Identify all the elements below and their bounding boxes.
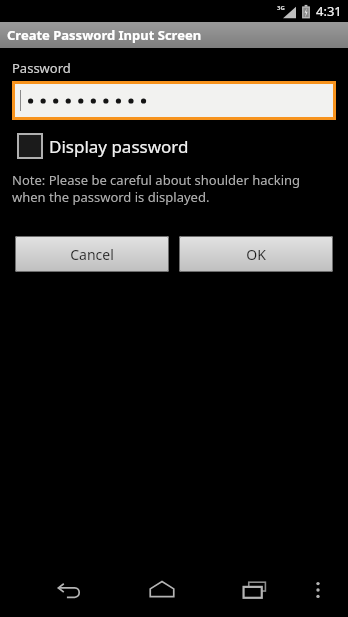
staticText: Display password	[49, 135, 189, 158]
staticText: OK	[246, 245, 266, 264]
button[interactable]: More options	[298, 570, 338, 610]
button[interactable]: Cancel	[15, 236, 169, 272]
staticText: Create Password Input Screen	[7, 26, 202, 44]
staticText: Password	[12, 59, 71, 77]
button[interactable]: Home	[139, 567, 185, 613]
button[interactable]: Display password	[12, 133, 189, 159]
staticText: Note: Please be careful about shoulder h…	[12, 171, 336, 206]
button[interactable]: Recent apps	[232, 567, 278, 613]
staticText: 3G	[277, 4, 285, 12]
button[interactable]	[15, 84, 333, 117]
button[interactable]: Back	[46, 567, 92, 613]
button[interactable]: OK	[179, 236, 333, 272]
staticText: 4:31	[316, 2, 342, 20]
staticText: Cancel	[70, 245, 114, 264]
